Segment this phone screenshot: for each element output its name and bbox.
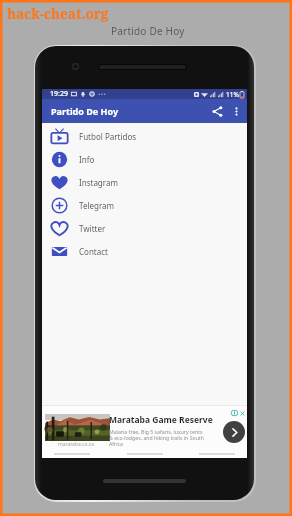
button[interactable]: Futbol Partidos bbox=[42, 125, 247, 148]
staticText: Twitter bbox=[79, 223, 106, 234]
staticText: Maratabа Game Reserve bbox=[109, 414, 213, 426]
staticText: 19:29 bbox=[50, 89, 68, 99]
staticText: Partido De Hoy bbox=[111, 24, 185, 38]
staticText: maratabа.co.za bbox=[58, 441, 94, 448]
staticText: Info bbox=[79, 154, 95, 165]
button[interactable]: Contact bbox=[42, 240, 247, 263]
button[interactable]: Instagram bbox=[42, 171, 247, 194]
staticText: Instagram bbox=[79, 177, 118, 188]
staticText: Malaria free, Big 5 safaris, luxury tent… bbox=[109, 428, 204, 447]
button[interactable]: Open advertisement bbox=[223, 421, 245, 443]
button[interactable]: Telegram bbox=[42, 194, 247, 217]
staticText: Contact bbox=[79, 246, 108, 257]
button[interactable]: Info bbox=[42, 148, 247, 171]
staticText: hack-cheat.org bbox=[7, 5, 109, 23]
staticText: 11% bbox=[226, 90, 239, 99]
button[interactable]: Twitter bbox=[42, 217, 247, 240]
staticText: Telegram bbox=[79, 200, 115, 211]
button[interactable]: More options bbox=[228, 103, 244, 119]
staticText: Partido De Hoy bbox=[51, 105, 119, 117]
staticText: Futbol Partidos bbox=[79, 131, 137, 142]
button[interactable]: Share bbox=[207, 101, 227, 121]
